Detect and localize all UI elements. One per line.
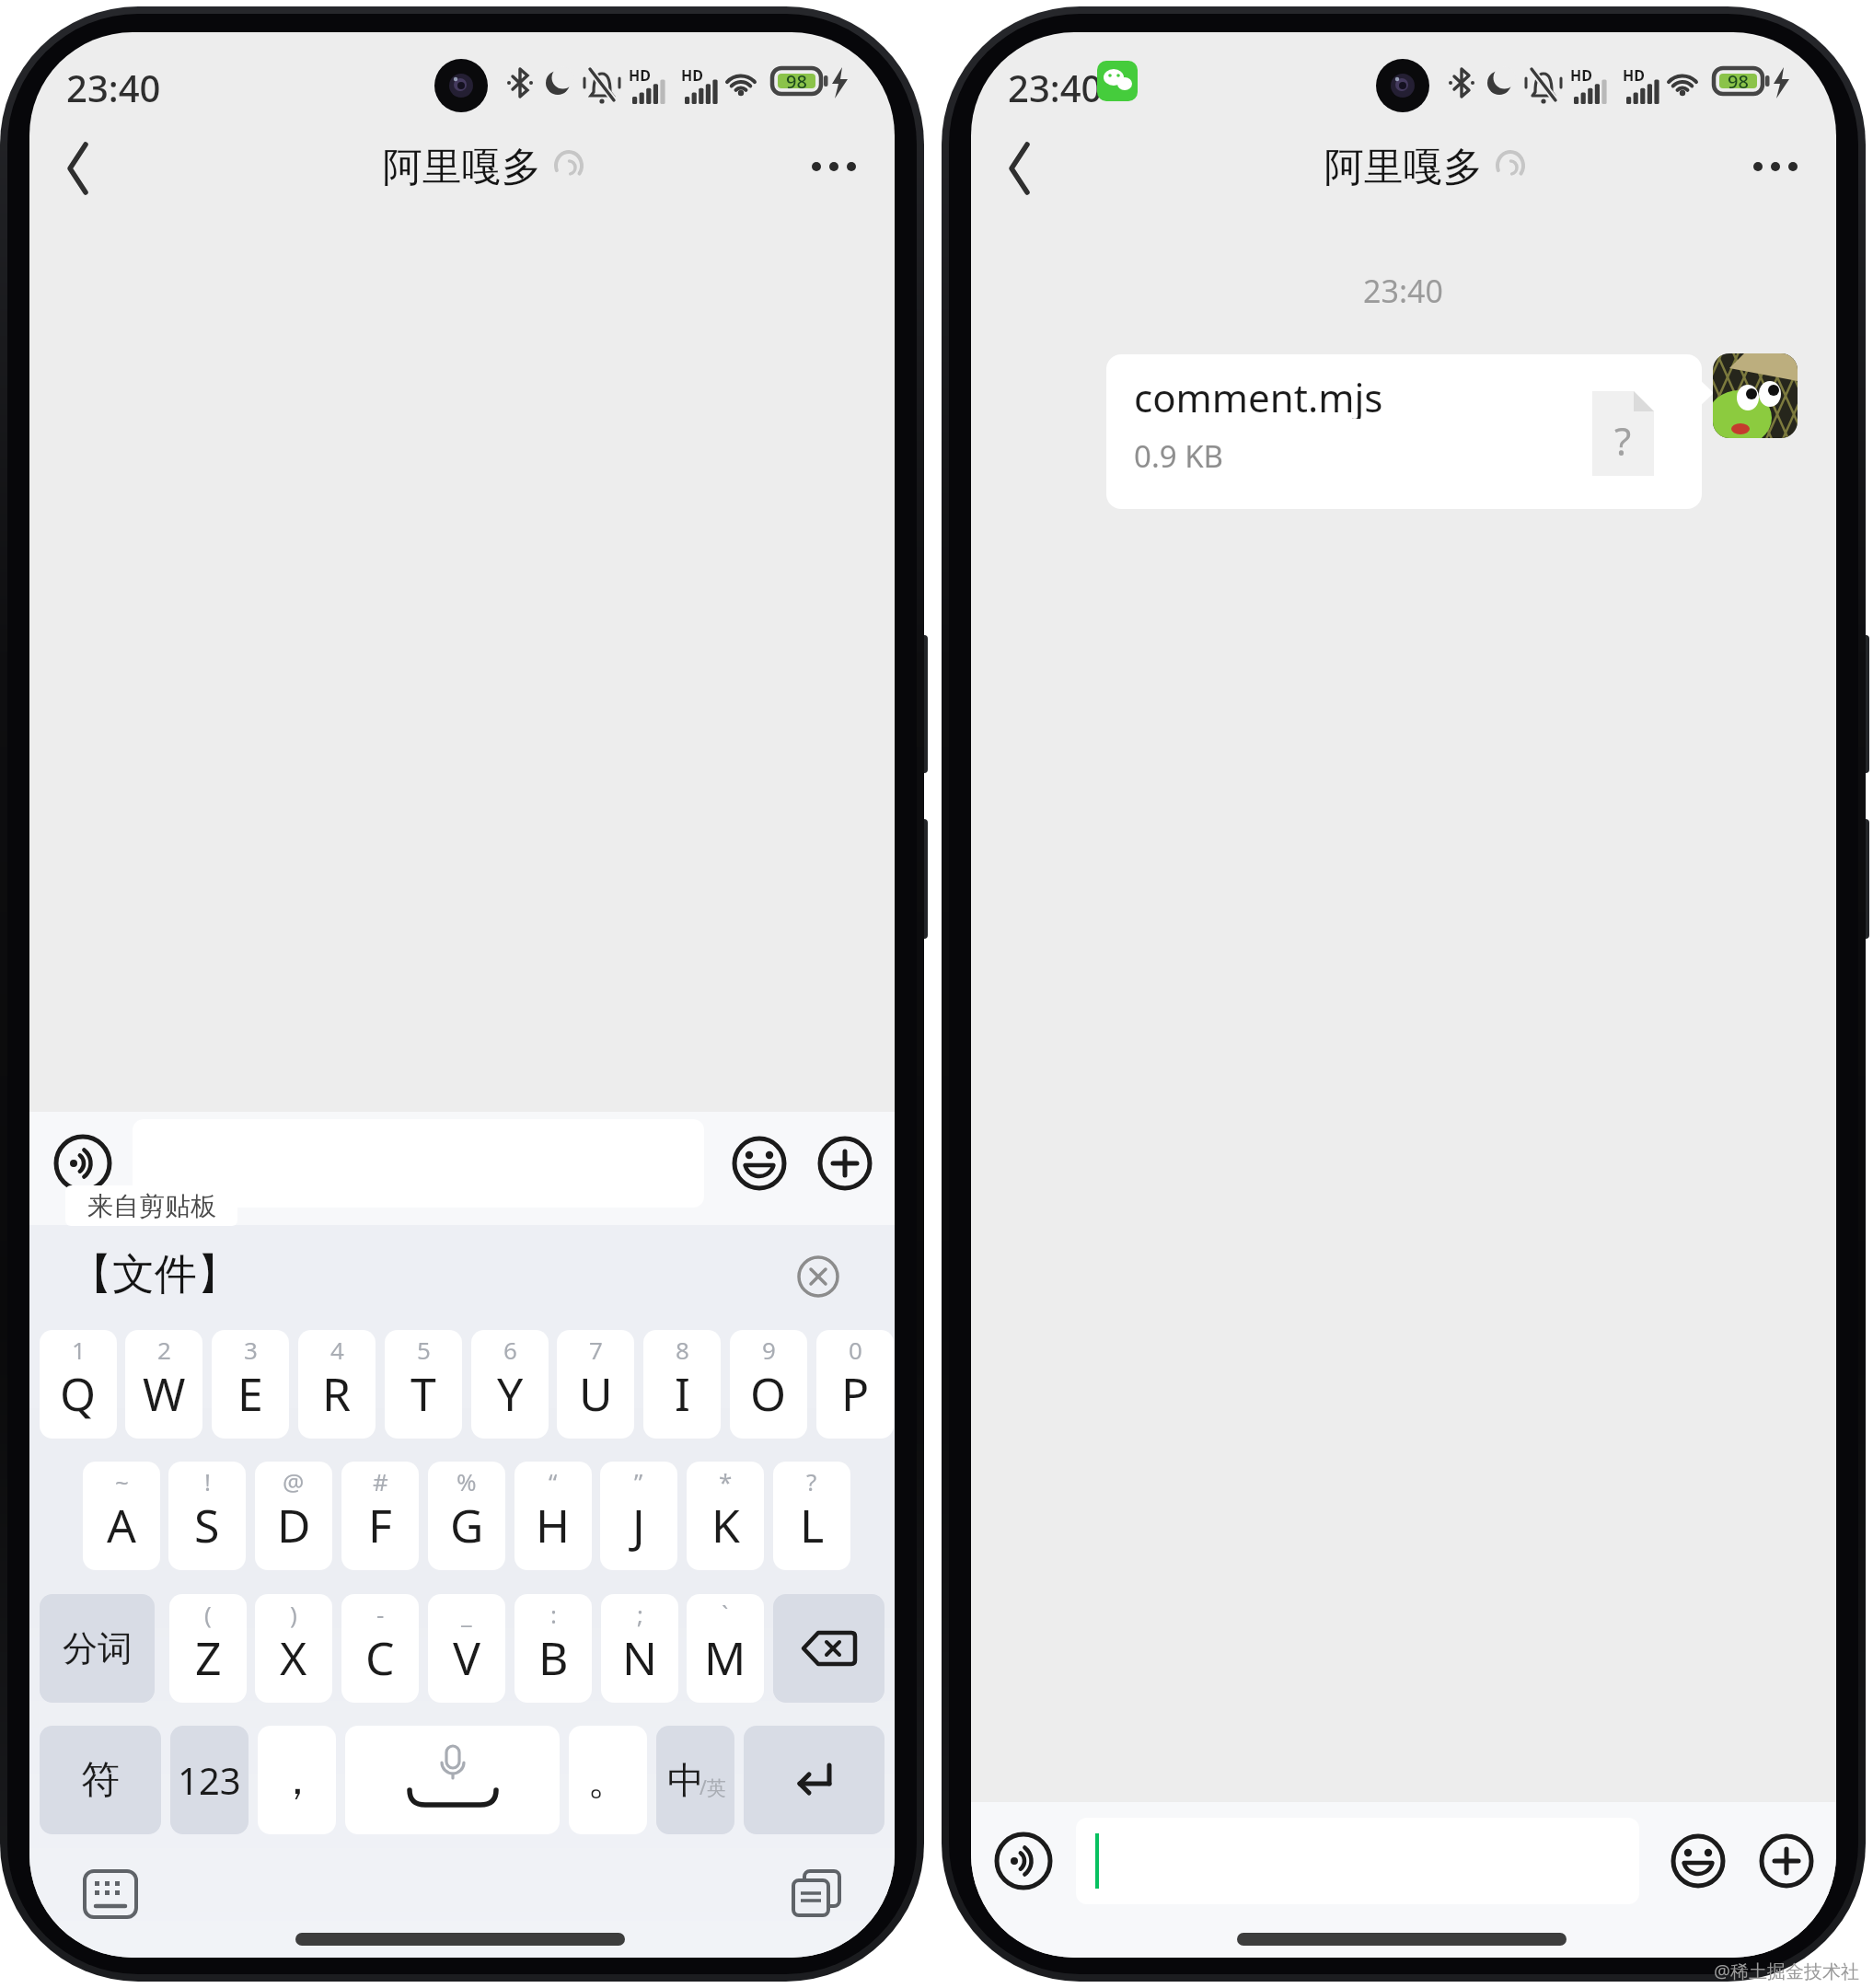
staticText: @ [283,1465,305,1497]
button[interactable] [133,1119,704,1208]
button[interactable]: 2 [125,1330,202,1439]
staticText: 98 [786,69,807,94]
button[interactable] [1106,354,1702,509]
staticText: G [450,1494,484,1556]
button[interactable] [790,1248,847,1305]
staticText: M [704,1626,746,1689]
button[interactable] [803,141,867,196]
staticText: 23:40 [1008,63,1103,103]
staticText: 符 [81,1756,120,1805]
staticText: Y [497,1362,524,1425]
button[interactable]: @ [255,1462,332,1570]
staticText: HD [681,65,703,84]
staticText: HD [1570,65,1592,84]
staticText: 4 [330,1334,344,1366]
button[interactable]: 1 [40,1330,117,1439]
button[interactable]: ~ [83,1462,160,1570]
button[interactable]: 3 [212,1330,289,1439]
staticText: J [632,1494,645,1556]
button[interactable] [1759,1833,1814,1889]
staticText: ~ [115,1465,129,1497]
staticText: E [237,1362,263,1425]
button[interactable]: 4 [298,1330,376,1439]
staticText: S [194,1494,220,1556]
button[interactable]: ” [600,1462,677,1570]
staticText: 9 [762,1334,776,1366]
button[interactable] [1671,1833,1726,1889]
button[interactable]: ( [169,1594,247,1703]
staticText: ! [204,1465,211,1497]
button[interactable]: : [514,1594,592,1703]
button[interactable]: 8 [643,1330,721,1439]
button[interactable] [994,1832,1053,1890]
button[interactable] [1713,353,1798,438]
staticText: HD [1623,65,1645,84]
button[interactable]: 。 [569,1726,647,1834]
button[interactable] [65,1185,237,1226]
staticText: # [373,1465,388,1497]
staticText: 阿里嘎多 [383,143,541,192]
staticText: 2 [157,1334,171,1366]
staticText: ? [806,1465,817,1497]
button[interactable]: 中 [656,1726,734,1834]
button[interactable]: “ [514,1462,592,1570]
staticText: 0 [849,1334,862,1366]
button[interactable]: 9 [730,1330,807,1439]
staticText: “ [549,1465,558,1497]
staticText: @稀土掘金技术社区 [1714,1959,1873,1984]
button[interactable]: % [428,1462,505,1570]
button[interactable]: _ [428,1594,505,1703]
button[interactable]: ) [255,1594,332,1703]
button[interactable]: * [687,1462,764,1570]
button[interactable] [999,141,1054,196]
button[interactable]: ! [168,1462,246,1570]
staticText: - [376,1598,385,1630]
button[interactable]: 0 [816,1330,894,1439]
button[interactable] [1744,141,1809,196]
staticText: HD [629,65,651,84]
button[interactable]: 符 [40,1726,161,1834]
button[interactable]: # [341,1462,419,1570]
button[interactable]: 123 [170,1726,249,1834]
button[interactable] [53,1134,112,1193]
staticText: 1 [72,1334,86,1366]
button[interactable]: 6 [471,1330,549,1439]
staticText: 123 [178,1755,241,1805]
staticText: ( [204,1598,212,1630]
button[interactable] [744,1726,884,1834]
staticText: V [453,1626,480,1689]
staticText: T [410,1362,436,1425]
button[interactable] [732,1136,787,1191]
staticText: 7 [589,1334,603,1366]
button[interactable] [773,1594,884,1703]
staticText: D [277,1494,311,1556]
staticText: F [368,1494,392,1556]
staticText: 【文件】 [70,1248,239,1301]
staticText: B [538,1626,569,1689]
staticText: comment.mjs [1134,371,1383,419]
staticText: C [365,1626,395,1689]
button[interactable]: 7 [557,1330,634,1439]
button[interactable]: 分词 [40,1594,155,1703]
button[interactable] [345,1726,560,1834]
staticText: 来自剪贴板 [87,1190,216,1222]
staticText: 。 [587,1753,630,1807]
button[interactable]: 5 [385,1330,462,1439]
button[interactable] [817,1136,873,1191]
button[interactable] [790,1869,845,1921]
button[interactable] [1076,1818,1639,1904]
staticText: 中 [667,1757,704,1803]
button[interactable] [83,1869,138,1921]
button[interactable]: ; [601,1594,678,1703]
staticText: ) [290,1598,297,1630]
button[interactable]: ` [687,1594,764,1703]
staticText: X [280,1626,307,1689]
button[interactable] [57,141,112,196]
staticText: W [143,1362,186,1425]
staticText: ， [276,1753,318,1807]
staticText: : [550,1598,557,1630]
staticText: O [750,1362,787,1425]
button[interactable]: - [341,1594,419,1703]
button[interactable]: ， [258,1726,336,1834]
button[interactable]: ? [773,1462,850,1570]
